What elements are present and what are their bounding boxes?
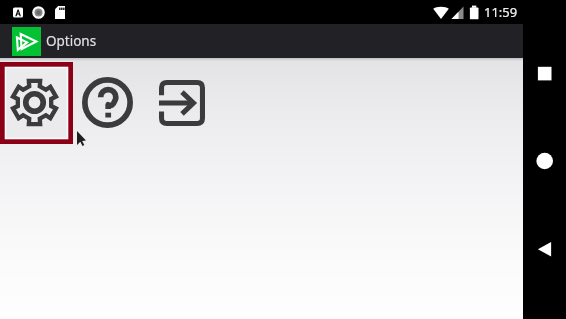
button[interactable]: Login	[159, 80, 205, 126]
button[interactable]: Recents	[525, 55, 565, 95]
button[interactable]: Settings	[0, 62, 73, 144]
staticText: 11:59	[484, 3, 518, 21]
button[interactable]: Back	[525, 229, 565, 269]
button[interactable]: Home	[525, 141, 565, 181]
button[interactable]: Help	[82, 77, 133, 128]
staticText: Options	[46, 32, 97, 50]
